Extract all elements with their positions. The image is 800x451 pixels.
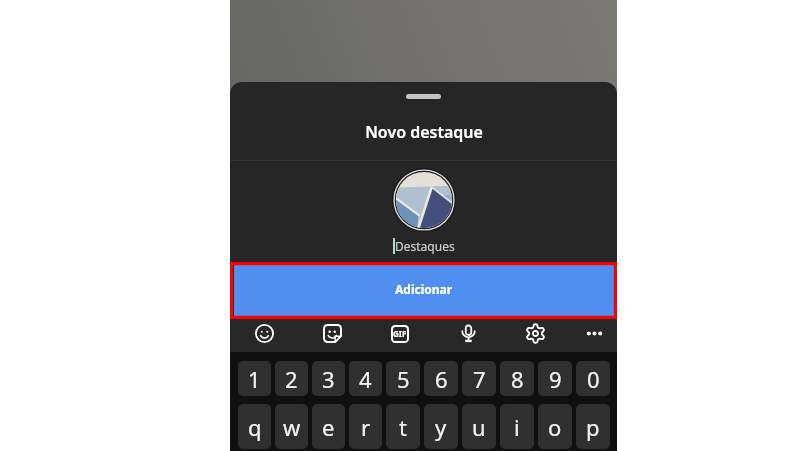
button[interactable]: 7 (462, 361, 496, 396)
staticText: 5 (397, 364, 410, 394)
button[interactable]: 8 (500, 361, 534, 396)
staticText: 4 (359, 364, 372, 394)
staticText: p (586, 412, 600, 442)
button[interactable]: w (275, 404, 308, 449)
staticText: Destaques (395, 238, 455, 254)
staticText: 0 (587, 364, 600, 394)
button[interactable]: p (576, 404, 610, 449)
staticText: w (283, 412, 301, 442)
button[interactable]: q (238, 404, 271, 449)
staticText: q (248, 412, 262, 442)
staticText: GIF (393, 328, 407, 339)
button[interactable]: More options (578, 319, 610, 352)
button[interactable]: 1 (238, 361, 271, 396)
staticText: y (435, 412, 447, 442)
button[interactable]: i (500, 404, 534, 449)
staticText: Adicionar (395, 281, 453, 297)
staticText: o (548, 412, 562, 442)
button[interactable]: 0 (576, 361, 610, 396)
staticText: Novo destaque (365, 121, 483, 143)
button[interactable]: 6 (424, 361, 458, 396)
staticText: t (399, 412, 407, 442)
staticText: 9 (549, 364, 562, 394)
button[interactable]: t (386, 404, 420, 449)
staticText: i (514, 412, 520, 442)
button[interactable]: 3 (312, 361, 345, 396)
button[interactable]: 4 (349, 361, 382, 396)
button[interactable]: r (349, 404, 382, 449)
staticText: 7 (473, 364, 486, 394)
button[interactable]: 5 (386, 361, 420, 396)
staticText: 2 (285, 364, 298, 394)
button[interactable]: y (424, 404, 458, 449)
button[interactable]: GIF (384, 319, 416, 352)
staticText: 8 (511, 364, 524, 394)
staticText: e (322, 412, 335, 442)
button[interactable]: u (462, 404, 496, 449)
button[interactable]: o (538, 404, 572, 449)
button[interactable]: Adicionar (234, 265, 614, 316)
button[interactable]: Emoji (248, 319, 280, 352)
button[interactable]: Settings (519, 319, 551, 352)
button[interactable]: Voice input (452, 319, 484, 352)
staticText: 6 (435, 364, 448, 394)
button[interactable]: 9 (538, 361, 572, 396)
button[interactable]: e (312, 404, 345, 449)
staticText: 1 (248, 364, 261, 394)
staticText: 3 (322, 364, 335, 394)
staticText: r (361, 412, 371, 442)
button[interactable]: 2 (275, 361, 308, 396)
staticText: u (472, 412, 486, 442)
button[interactable]: Sticker (316, 319, 348, 352)
